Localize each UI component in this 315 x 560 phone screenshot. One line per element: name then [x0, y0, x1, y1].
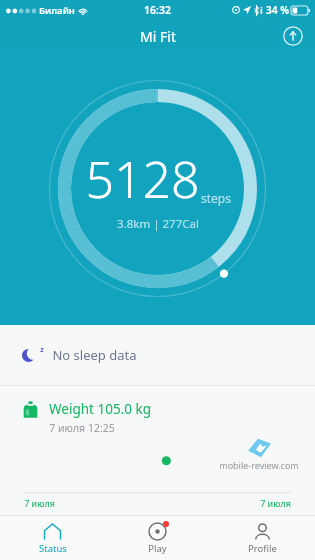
staticText: Mi Fit — [140, 27, 176, 46]
staticText: Weight 105.0 kg — [49, 400, 151, 418]
staticText: 7 июля 12:25 — [49, 421, 115, 435]
staticText: 7 июля — [24, 497, 55, 509]
staticText: 16:32 — [144, 3, 171, 17]
staticText: Status — [39, 542, 67, 555]
button[interactable]: Profile — [210, 520, 315, 557]
staticText: Play — [148, 542, 167, 555]
staticText: i — [260, 5, 263, 16]
staticText: No sleep data — [52, 346, 137, 364]
staticText: 3.8km | 277Cal — [117, 216, 199, 232]
staticText: steps — [201, 190, 231, 206]
button[interactable]: Status — [0, 520, 105, 557]
button[interactable]: Share — [281, 24, 305, 48]
button[interactable]: z — [0, 325, 315, 385]
staticText: 7 июля — [260, 497, 291, 509]
button[interactable]: Weight 105.0 kg — [0, 386, 315, 513]
staticText: 5128 — [85, 145, 200, 213]
staticText: Билайн — [39, 4, 75, 17]
staticText: 34 % — [266, 3, 289, 17]
staticText: mobile-review.com — [219, 459, 299, 471]
staticText: z — [40, 345, 44, 355]
button[interactable]: Play — [105, 520, 210, 557]
staticText: Profile — [248, 542, 277, 555]
